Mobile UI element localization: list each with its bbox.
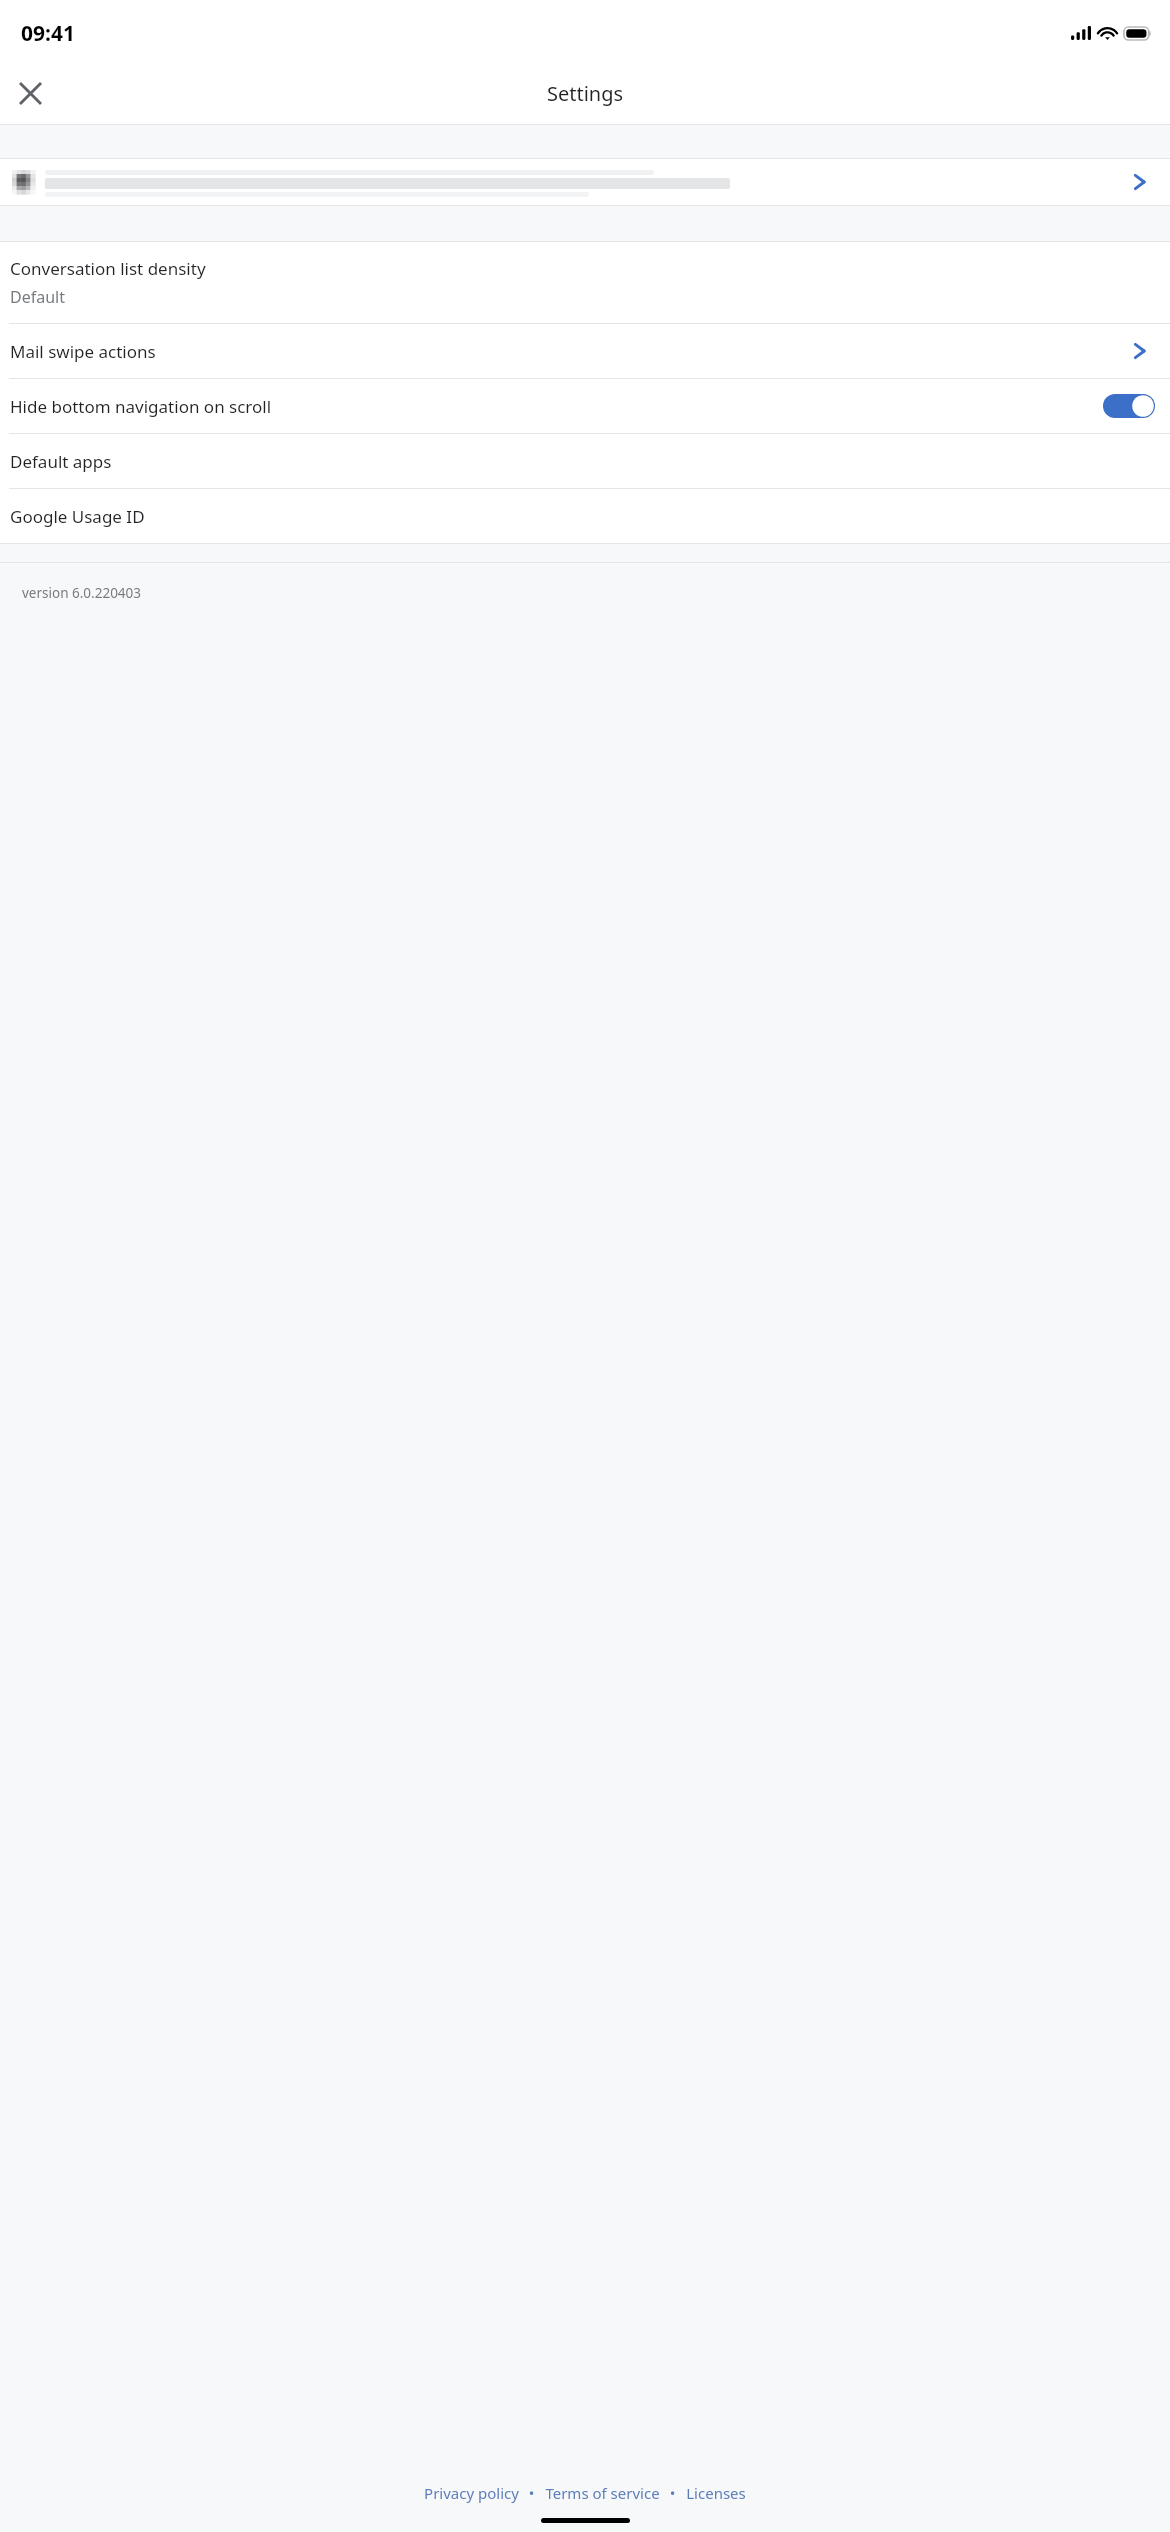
staticText: Mail swipe actions (10, 340, 1133, 363)
staticText: Conversation list density (10, 257, 206, 280)
staticText: version 6.0.220403 (22, 584, 142, 602)
staticText: Licenses (686, 2483, 746, 2503)
staticText: Google Usage ID (10, 505, 145, 528)
staticText: Privacy policy (424, 2483, 519, 2503)
button[interactable]: Mail swipe actions (0, 324, 1170, 378)
button[interactable]: Conversation list density (0, 242, 1170, 323)
staticText: 09:41 (21, 19, 75, 48)
button[interactable]: Privacy policy (422, 2479, 521, 2507)
staticText: Default apps (10, 450, 112, 473)
staticText: Hide bottom navigation on scroll (10, 395, 1103, 418)
button[interactable]: Close (6, 69, 54, 117)
button[interactable]: Account (0, 159, 1170, 205)
staticText: • (662, 2483, 684, 2503)
button[interactable]: Hide bottom navigation on scroll (0, 379, 1170, 433)
staticText: • (521, 2483, 543, 2503)
staticText: Settings (547, 80, 624, 107)
button[interactable]: Licenses (684, 2479, 748, 2507)
button[interactable]: Terms of service (543, 2479, 662, 2507)
button[interactable]: Default apps (0, 434, 1170, 488)
staticText: Default (10, 286, 65, 308)
button[interactable]: Google Usage ID (0, 489, 1170, 543)
staticText: Terms of service (545, 2483, 660, 2503)
